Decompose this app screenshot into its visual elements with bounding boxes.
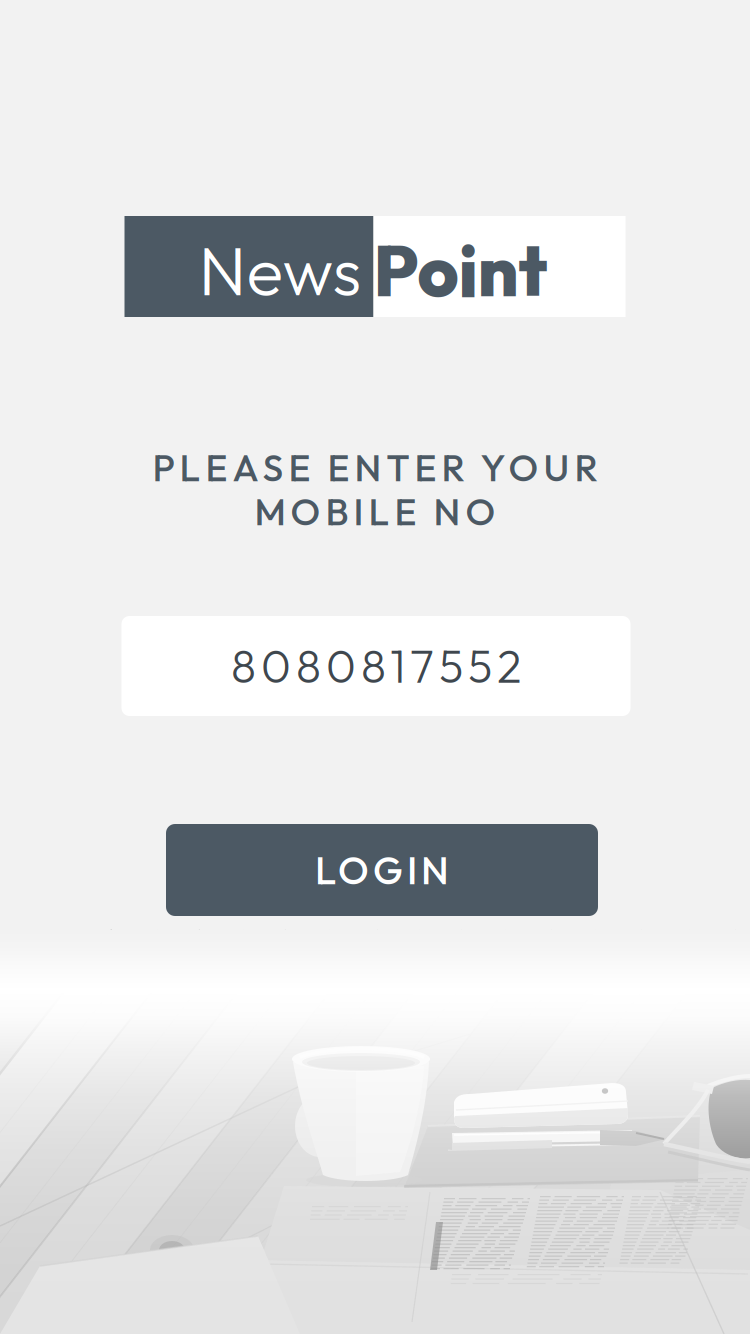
button[interactable]: LOGIN — [166, 824, 598, 916]
staticText: LOGIN — [315, 846, 449, 894]
staticText: PLEASE ENTER YOUR — [152, 444, 597, 491]
staticText: MOBILE NO — [254, 488, 495, 535]
staticText: 8080817552 — [231, 637, 521, 694]
staticText: News — [198, 227, 361, 313]
button[interactable]: 8080817552 — [121, 616, 630, 716]
staticText: Point — [373, 225, 547, 314]
